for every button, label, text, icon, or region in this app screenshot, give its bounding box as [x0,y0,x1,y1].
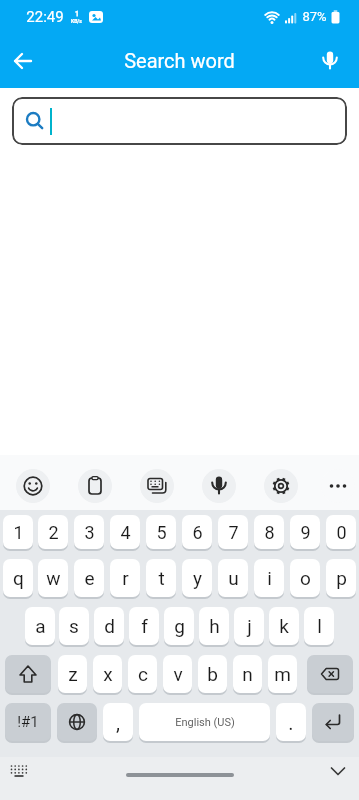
button[interactable]: i [254,559,284,597]
button[interactable] [307,655,353,693]
staticText: m [274,663,291,685]
button[interactable]: s [59,607,89,645]
button[interactable] [6,44,40,78]
button[interactable]: English (US) [139,703,270,741]
staticText: z [68,663,78,685]
staticText: c [138,663,148,685]
staticText: 6 [192,522,203,543]
staticText: d [104,615,115,637]
button[interactable]: t [146,559,176,597]
staticText: KB/s [71,18,82,24]
button[interactable] [6,758,32,784]
button[interactable]: a [25,607,55,645]
staticText: u [228,567,239,589]
button[interactable]: n [233,655,262,693]
staticText: q [13,567,24,589]
button[interactable] [12,97,347,145]
staticText: n [242,663,253,685]
staticText: 7 [228,522,239,543]
button[interactable]: g [164,607,194,645]
button[interactable]: x [93,655,122,693]
staticText: , [116,711,120,734]
button[interactable] [140,469,174,503]
staticText: o [300,567,311,589]
staticText: 3 [84,522,95,543]
button[interactable]: o [290,559,320,597]
staticText: y [193,567,202,589]
button[interactable]: v [163,655,192,693]
staticText: j [247,615,252,637]
staticText: x [103,663,113,685]
button[interactable]: h [199,607,229,645]
staticText: l [317,615,322,637]
staticText: h [209,615,220,637]
staticText: 2 [48,522,59,543]
staticText: f [141,615,148,637]
staticText: 1 [13,522,24,543]
staticText: Search word [124,49,235,72]
staticText: p [336,567,347,589]
button[interactable]: p [326,559,356,597]
button[interactable]: w [38,559,68,597]
button[interactable]: , [103,703,133,741]
staticText: s [69,615,79,637]
staticText: i [267,567,272,589]
button[interactable]: d [94,607,124,645]
staticText: b [207,663,218,685]
staticText: 4 [120,522,131,543]
button[interactable] [202,469,236,503]
staticText: r [122,567,129,589]
button[interactable]: 3 [74,515,104,549]
button[interactable] [313,44,347,78]
staticText: a [35,615,46,637]
button[interactable]: 0 [326,515,356,549]
button[interactable]: u [218,559,248,597]
button[interactable] [78,469,112,503]
staticText: !#1 [17,713,39,731]
button[interactable] [312,703,354,741]
button[interactable]: 9 [290,515,320,549]
button[interactable]: q [3,559,33,597]
button[interactable] [325,758,351,784]
staticText: w [46,567,61,589]
staticText: t [158,567,165,589]
staticText: 9 [300,522,311,543]
button[interactable]: 8 [254,515,284,549]
button[interactable]: 2 [38,515,68,549]
staticText: k [279,615,289,637]
button[interactable]: 5 [146,515,176,549]
button[interactable]: !#1 [5,703,51,741]
button[interactable]: 4 [110,515,140,549]
button[interactable]: m [268,655,297,693]
button[interactable] [264,469,298,503]
button[interactable] [321,469,355,503]
button[interactable] [5,655,51,693]
button[interactable]: r [110,559,140,597]
button[interactable]: f [129,607,159,645]
button[interactable]: y [182,559,212,597]
staticText: g [174,615,185,637]
button[interactable] [16,469,50,503]
button[interactable]: 1 [3,515,33,549]
button[interactable]: e [74,559,104,597]
button[interactable]: z [58,655,87,693]
button[interactable]: 6 [182,515,212,549]
staticText: . [288,711,294,734]
button[interactable] [57,703,97,741]
button[interactable]: l [304,607,334,645]
staticText: 8 [264,522,275,543]
staticText: e [84,567,95,589]
button[interactable]: k [269,607,299,645]
staticText: v [173,663,183,685]
button[interactable]: . [276,703,306,741]
button[interactable]: j [234,607,264,645]
staticText: 1 [75,10,79,18]
button[interactable]: b [198,655,227,693]
staticText: English (US) [175,716,235,729]
button[interactable]: 7 [218,515,248,549]
staticText: 87% [302,9,327,24]
staticText: 5 [156,522,167,543]
button[interactable]: c [128,655,157,693]
staticText: 0 [336,522,347,543]
staticText: 22:49 [26,8,64,26]
